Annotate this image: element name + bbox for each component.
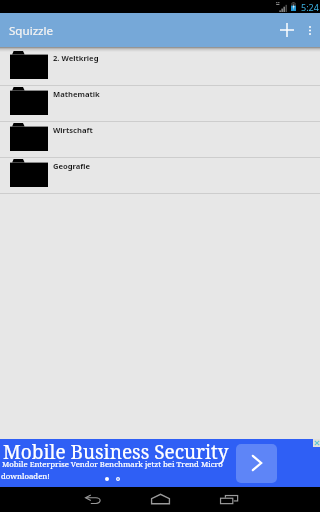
staticText: Mathematik	[53, 89, 100, 99]
staticText: Mobile Business Security	[3, 439, 229, 465]
staticText: Mobile Enterprise Vendor Benchmark jetzt…	[2, 459, 223, 470]
staticText: 5:24	[301, 1, 319, 13]
staticText: Wirtschaft	[53, 125, 93, 135]
button[interactable]: Geografie	[0, 158, 320, 194]
button[interactable]: More options	[300, 13, 320, 47]
staticText: Geografie	[53, 161, 91, 171]
button[interactable]: Back	[58, 487, 126, 512]
button[interactable]: Add	[272, 13, 300, 47]
button[interactable]: Wirtschaft	[0, 122, 320, 158]
button[interactable]: Home	[126, 487, 194, 512]
button[interactable]: Close ad	[313, 439, 320, 447]
button[interactable]: Mathematik	[0, 86, 320, 122]
staticText: Squizzle	[9, 23, 54, 39]
button[interactable]: 2. Weltkrieg	[0, 50, 320, 86]
staticText: 2. Weltkrieg	[53, 53, 99, 63]
button[interactable]: Recent apps	[194, 487, 262, 512]
staticText: downloaden!	[1, 471, 50, 482]
button[interactable]: Next ad	[236, 444, 277, 483]
